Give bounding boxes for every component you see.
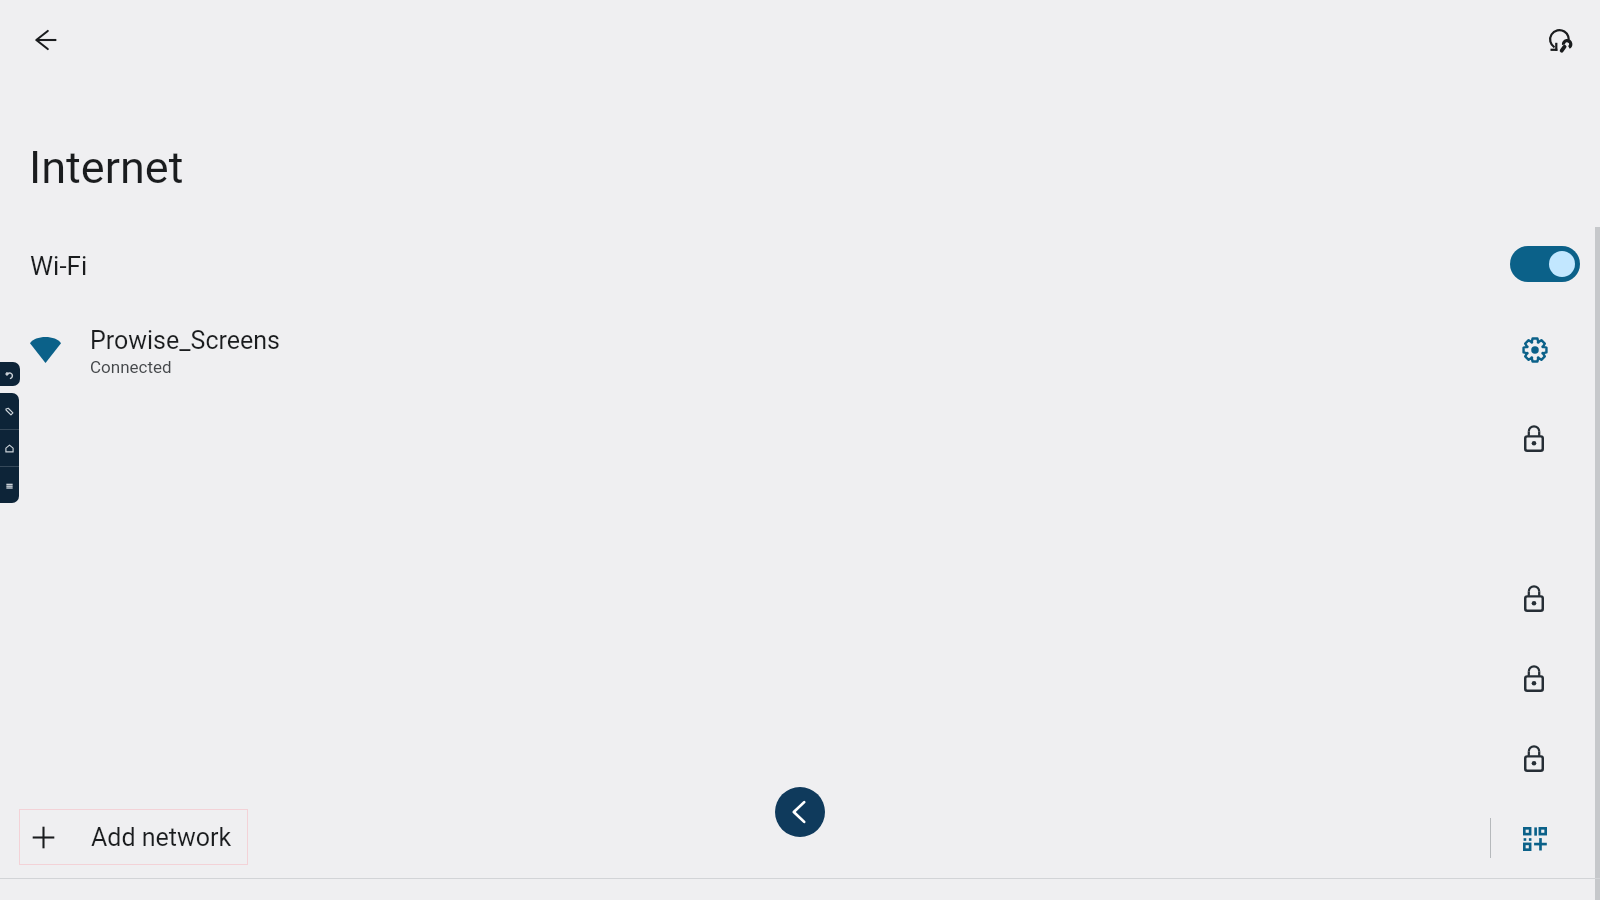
- button[interactable]: Back: [775, 787, 825, 837]
- button[interactable]: Reset network settings: [1536, 16, 1584, 64]
- staticText: Connected: [90, 357, 172, 377]
- button[interactable]: [1502, 566, 1566, 630]
- staticText: Prowise_Screens: [90, 326, 280, 355]
- button[interactable]: Pen: [0, 393, 19, 429]
- button[interactable]: Network settings: [1503, 318, 1567, 382]
- button[interactable]: Prowise_Screens: [0, 318, 1600, 382]
- staticText: Wi-Fi: [30, 251, 88, 281]
- button[interactable]: Add network: [19, 809, 248, 865]
- button[interactable]: Undo: [0, 362, 20, 386]
- staticText: Add network: [91, 823, 232, 852]
- button[interactable]: [1502, 726, 1566, 790]
- button[interactable]: Menu: [0, 467, 19, 503]
- button[interactable]: Back: [22, 16, 70, 64]
- button[interactable]: Wi-Fi toggle: [1510, 246, 1580, 282]
- button[interactable]: Home: [0, 430, 19, 466]
- button[interactable]: [1502, 406, 1566, 470]
- button[interactable]: [1502, 646, 1566, 710]
- staticText: Internet: [29, 141, 184, 194]
- button[interactable]: Scan QR code: [1502, 806, 1566, 870]
